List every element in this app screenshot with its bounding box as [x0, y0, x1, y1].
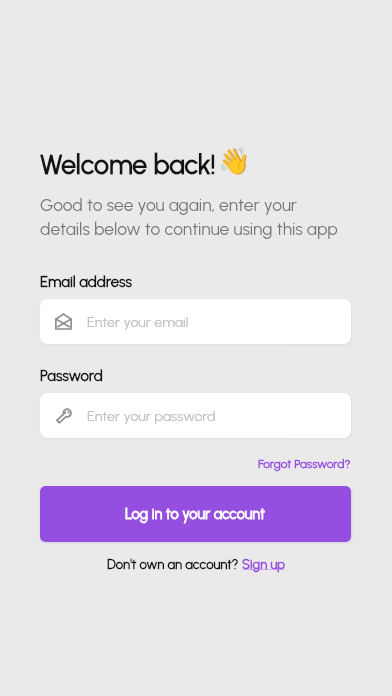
- staticText: 👋: [218, 146, 251, 177]
- button[interactable]: Enter your email: [40, 299, 351, 344]
- staticText: Email address: [40, 273, 132, 291]
- staticText: Welcome back!: [40, 149, 216, 181]
- staticText: Log in to your account: [125, 505, 266, 523]
- staticText: Don't own an account?: [107, 556, 242, 572]
- button[interactable]: Log in to your account: [40, 486, 351, 542]
- staticText: Password: [40, 367, 103, 385]
- button[interactable]: Sign up: [242, 556, 285, 572]
- staticText: Enter your email: [87, 313, 189, 330]
- button[interactable]: Forgot Password?: [258, 457, 351, 471]
- staticText: Sign up: [242, 556, 285, 572]
- staticText: Forgot Password?: [258, 457, 351, 471]
- button[interactable]: Enter your password: [40, 393, 351, 438]
- staticText: Enter your password: [87, 407, 216, 424]
- staticText: Good to see you again, enter your detail…: [40, 194, 338, 239]
